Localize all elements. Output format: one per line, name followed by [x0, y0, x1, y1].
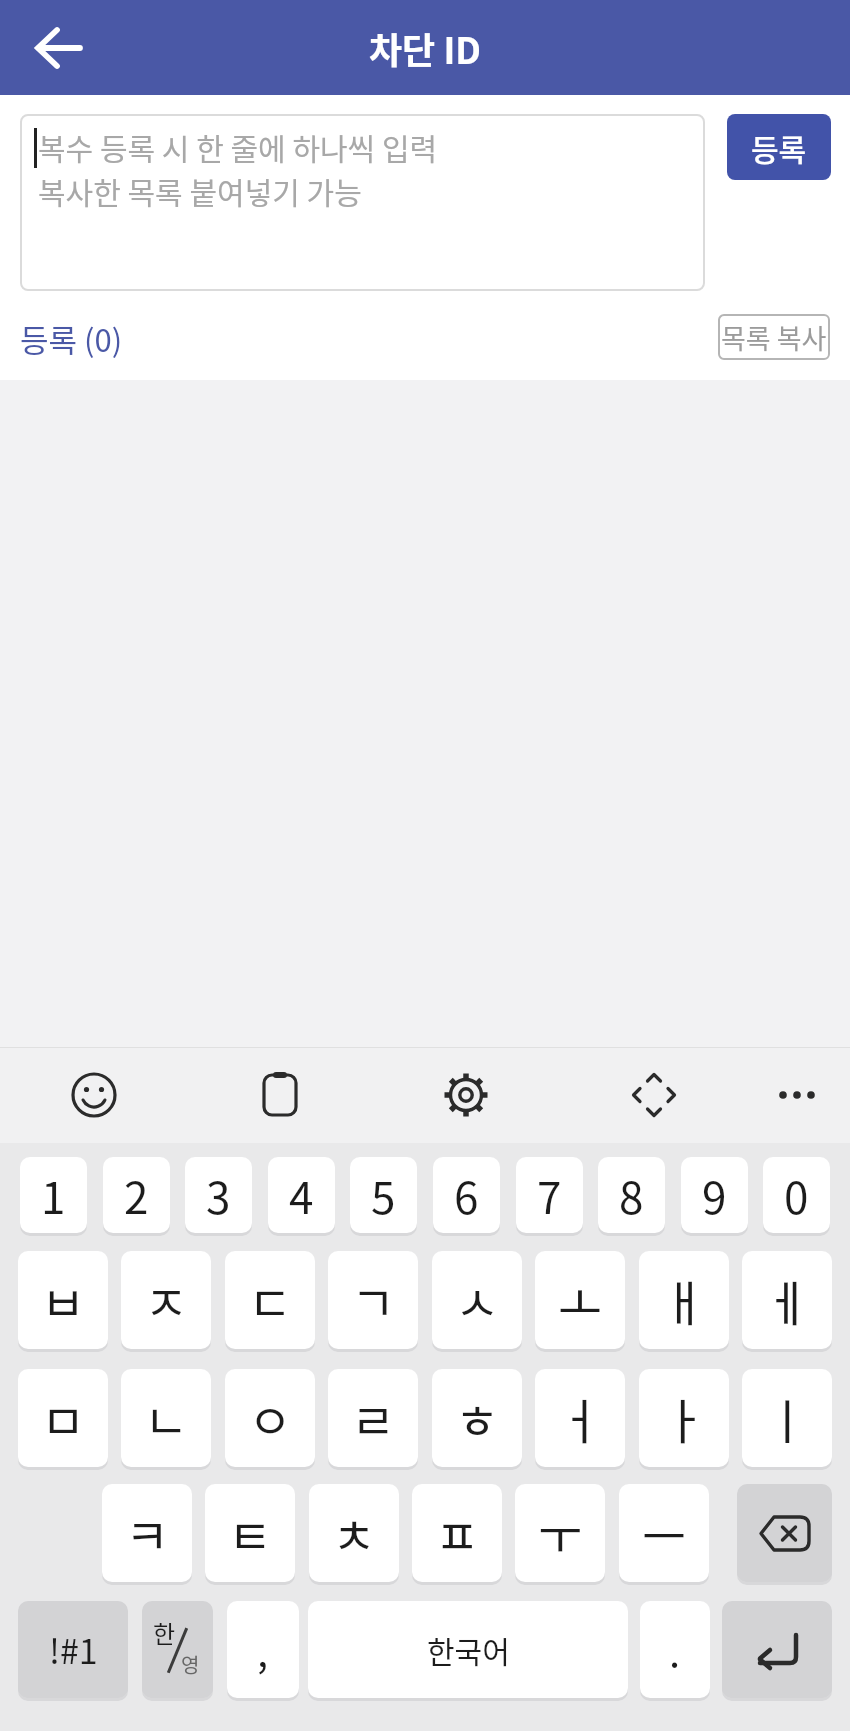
staticText: 한국어 — [427, 1628, 510, 1671]
button[interactable]: ㅋ — [102, 1484, 192, 1582]
staticText: 3 — [206, 1163, 231, 1227]
staticText: ㄹ — [351, 1383, 396, 1453]
button[interactable]: 3 — [185, 1157, 252, 1233]
staticText: ㅔ — [765, 1265, 810, 1335]
staticText: 6 — [454, 1163, 479, 1227]
button[interactable] — [24, 14, 92, 82]
button[interactable]: ㅎ — [432, 1369, 522, 1467]
button[interactable]: ㅔ — [742, 1251, 832, 1349]
button[interactable]: 한국어 — [308, 1601, 628, 1698]
button[interactable]: !#1 — [18, 1601, 128, 1698]
button[interactable]: ㅂ — [18, 1251, 108, 1349]
button[interactable]: ㅁ — [18, 1369, 108, 1467]
button[interactable] — [620, 1061, 688, 1129]
staticText: 9 — [702, 1163, 727, 1227]
button[interactable]: 6 — [433, 1157, 500, 1233]
staticText: ㅗ — [558, 1265, 603, 1335]
button[interactable]: ㅊ — [309, 1484, 399, 1582]
staticText: 2 — [124, 1163, 149, 1227]
button[interactable]: ㅐ — [639, 1251, 729, 1349]
button[interactable]: 9 — [681, 1157, 748, 1233]
staticText: 8 — [619, 1163, 644, 1227]
button[interactable]: . — [640, 1601, 710, 1698]
button[interactable] — [246, 1061, 314, 1129]
button[interactable]: ㄱ — [328, 1251, 418, 1349]
staticText: 7 — [537, 1163, 562, 1227]
staticText: 등록 — [751, 126, 807, 169]
staticText: ㅐ — [662, 1265, 707, 1335]
staticText: 1 — [41, 1163, 66, 1227]
button[interactable]: 8 — [598, 1157, 665, 1233]
button[interactable]: ㄷ — [225, 1251, 315, 1349]
staticText: 0 — [784, 1163, 809, 1227]
staticText: ㅎ — [455, 1383, 500, 1453]
button[interactable]: 등록 (0) — [20, 316, 123, 361]
button[interactable]: ㅏ — [639, 1369, 729, 1467]
staticText: ㅋ — [125, 1498, 170, 1568]
staticText: ㅈ — [144, 1265, 189, 1335]
staticText: 영 — [181, 1650, 200, 1679]
button[interactable]: ㅇ — [225, 1369, 315, 1467]
staticText: , — [257, 1621, 269, 1679]
button[interactable] — [737, 1484, 832, 1582]
button[interactable]: 5 — [350, 1157, 417, 1233]
button[interactable]: 0 — [763, 1157, 830, 1233]
button[interactable]: ㅌ — [205, 1484, 295, 1582]
staticText: ㅓ — [558, 1383, 603, 1453]
staticText: ㅇ — [248, 1383, 293, 1453]
staticText: ㅡ — [642, 1498, 687, 1568]
button[interactable]: 4 — [268, 1157, 335, 1233]
button[interactable]: 7 — [516, 1157, 583, 1233]
staticText: ㅍ — [435, 1498, 480, 1568]
button[interactable] — [763, 1061, 831, 1129]
staticText: 5 — [371, 1163, 396, 1227]
button[interactable]: ㅗ — [535, 1251, 625, 1349]
button[interactable]: 등록 — [727, 114, 831, 180]
staticText: ㄴ — [144, 1383, 189, 1453]
staticText: ㅌ — [228, 1498, 273, 1568]
staticText: ㅜ — [538, 1498, 583, 1568]
staticText: ㅁ — [41, 1383, 86, 1453]
button[interactable]: 목록 복사 — [718, 314, 830, 360]
staticText: 복수 등록 시 한 줄에 하나씩 입력 복사한 목록 붙여넣기 가능 — [38, 125, 438, 213]
button[interactable]: ㅣ — [742, 1369, 832, 1467]
staticText: . — [669, 1621, 681, 1679]
button[interactable]: ㄴ — [121, 1369, 211, 1467]
button[interactable]: ㅡ — [619, 1484, 709, 1582]
button[interactable]: 2 — [103, 1157, 170, 1233]
button[interactable] — [722, 1601, 832, 1698]
button[interactable]: 1 — [20, 1157, 87, 1233]
staticText: 목록 복사 — [721, 318, 827, 357]
staticText: ㅊ — [332, 1498, 377, 1568]
staticText: ㄱ — [351, 1265, 396, 1335]
button[interactable] — [60, 1061, 128, 1129]
staticText: 차단 ID — [369, 22, 481, 74]
staticText: ㄷ — [248, 1265, 293, 1335]
staticText: ㅂ — [41, 1265, 86, 1335]
staticText: !#1 — [49, 1625, 98, 1674]
button[interactable]: ㅓ — [535, 1369, 625, 1467]
button[interactable]: ㄹ — [328, 1369, 418, 1467]
button[interactable]: ㅅ — [432, 1251, 522, 1349]
staticText: 등록 (0) — [20, 316, 123, 361]
button[interactable]: ㅍ — [412, 1484, 502, 1582]
button[interactable] — [432, 1061, 500, 1129]
button[interactable]: ㅈ — [121, 1251, 211, 1349]
staticText: ㅏ — [662, 1383, 707, 1453]
staticText: 한 — [153, 1615, 176, 1650]
button[interactable]: , — [227, 1601, 299, 1698]
button[interactable]: ㅜ — [515, 1484, 605, 1582]
staticText: ㅅ — [455, 1265, 500, 1335]
staticText: ㅣ — [765, 1383, 810, 1453]
button[interactable]: 한 — [142, 1601, 213, 1698]
staticText: 4 — [289, 1163, 314, 1227]
